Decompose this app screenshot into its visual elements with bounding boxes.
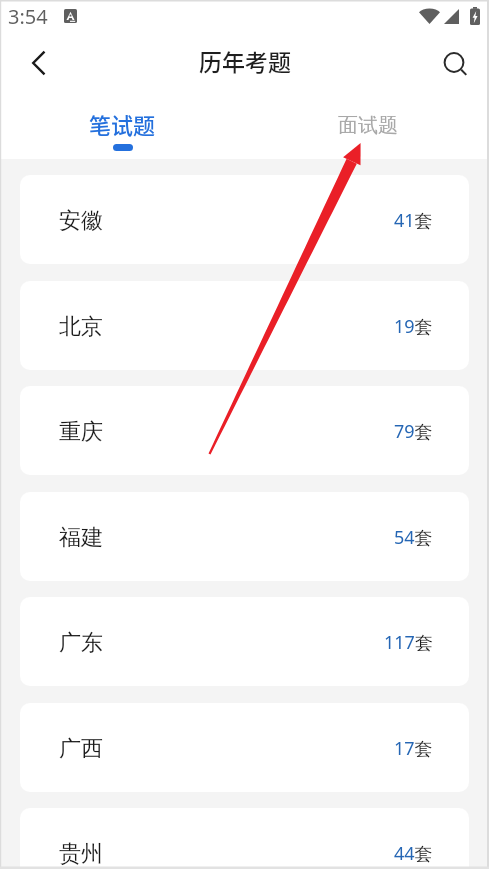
- button[interactable]: 笔试题: [0, 94, 245, 159]
- staticText: 19套: [394, 314, 433, 339]
- button[interactable]: 重庆: [20, 386, 469, 475]
- button[interactable]: Search: [431, 39, 479, 87]
- button[interactable]: 安徽: [20, 175, 469, 264]
- staticText: 117套: [384, 630, 433, 655]
- button[interactable]: 广西: [20, 703, 469, 792]
- staticText: 广西: [59, 735, 103, 763]
- staticText: 79套: [394, 419, 433, 444]
- button[interactable]: 广东: [20, 597, 469, 686]
- staticText: 安徽: [59, 207, 103, 235]
- button[interactable]: Back: [15, 39, 63, 87]
- staticText: 福建: [59, 524, 103, 552]
- staticText: 41套: [394, 208, 433, 233]
- staticText: 54套: [394, 525, 433, 550]
- staticText: 历年考题: [199, 44, 291, 77]
- staticText: 北京: [59, 313, 103, 341]
- button[interactable]: 北京: [20, 281, 469, 370]
- staticText: 贵州: [59, 840, 103, 868]
- button[interactable]: 贵州: [20, 808, 469, 869]
- staticText: 44套: [394, 841, 433, 866]
- staticText: 17套: [394, 736, 433, 761]
- staticText: 重庆: [59, 418, 103, 446]
- staticText: 笔试题: [89, 108, 156, 140]
- staticText: 广东: [59, 629, 103, 657]
- staticText: 面试题: [338, 113, 398, 138]
- button[interactable]: 面试题: [245, 94, 489, 159]
- staticText: 3:54: [8, 3, 48, 30]
- button[interactable]: 福建: [20, 492, 469, 581]
